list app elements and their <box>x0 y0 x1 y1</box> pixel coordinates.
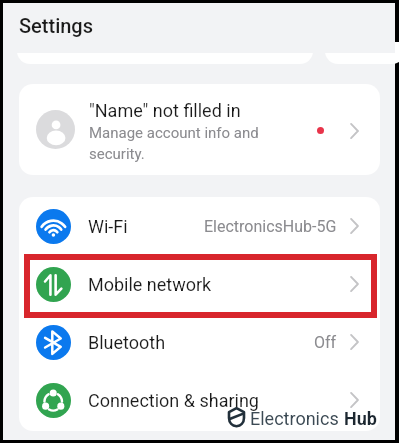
staticText: Bluetooth <box>88 332 166 353</box>
staticText: Wi-Fi <box>88 216 128 237</box>
staticText: Connection & sharing <box>88 390 259 411</box>
staticText: "Name" not filled in <box>89 100 241 121</box>
staticText: Settings <box>19 14 94 37</box>
button[interactable]: Wi-Fi <box>19 197 380 255</box>
button[interactable]: Bluetooth <box>19 313 380 371</box>
staticText: ElectronicsHub-5G <box>204 217 337 236</box>
staticText: Off <box>314 333 337 352</box>
button[interactable] <box>17 42 313 64</box>
staticText: Electronics <box>250 408 344 429</box>
button[interactable]: Mobile network <box>19 255 380 313</box>
staticText: Mobile network <box>88 274 212 295</box>
staticText: Settings <box>19 14 94 37</box>
button[interactable] <box>325 42 399 64</box>
button[interactable]: Connection & sharing <box>19 371 380 429</box>
button[interactable]: "Name" not filled in <box>19 84 380 175</box>
staticText: Hub <box>344 408 377 429</box>
staticText: Manage account info and security. <box>89 124 259 162</box>
